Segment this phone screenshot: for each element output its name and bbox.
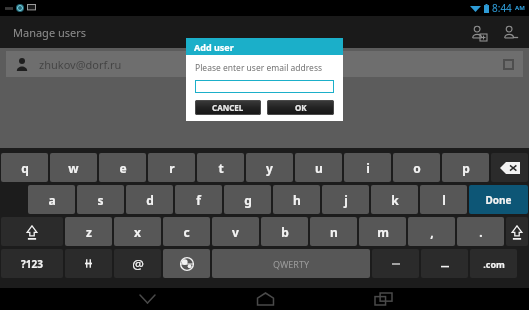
staticText: x (134, 224, 141, 240)
button[interactable]: z (65, 217, 112, 246)
button[interactable]: .com (470, 249, 517, 278)
button[interactable]: e (99, 153, 146, 182)
button[interactable]: ?123 (1, 249, 63, 278)
staticText: AM (515, 4, 525, 12)
staticText: n (330, 224, 338, 240)
staticText: c (183, 224, 190, 240)
staticText: m (377, 224, 389, 240)
button[interactable]: t (197, 153, 244, 182)
button[interactable]: q (1, 153, 48, 182)
staticText: y (266, 160, 273, 176)
button[interactable]: Home (236, 288, 294, 310)
staticText: t (218, 160, 224, 176)
button[interactable]: h (273, 185, 320, 214)
staticText: u (315, 160, 323, 176)
button[interactable]: s (77, 185, 124, 214)
staticText: .com (483, 258, 505, 270)
staticText: v (232, 224, 239, 240)
staticText: Manage users (13, 25, 87, 40)
button[interactable]: Input method (65, 249, 112, 278)
button[interactable]: f (175, 185, 222, 214)
staticText: w (68, 160, 79, 176)
button[interactable] (195, 80, 334, 93)
button[interactable]: c (163, 217, 210, 246)
staticText: . (479, 224, 483, 240)
staticText: i (366, 160, 370, 176)
staticText: p (462, 160, 470, 176)
staticText: e (119, 160, 127, 176)
button[interactable]: Space (212, 249, 370, 278)
button[interactable]: r (148, 153, 195, 182)
staticText: r (169, 160, 175, 176)
staticText: z (86, 224, 92, 240)
staticText: k (391, 192, 399, 208)
button[interactable]: Done (469, 185, 528, 214)
staticText: Add user (194, 41, 234, 53)
staticText: ?123 (21, 257, 43, 271)
staticText: b (281, 224, 289, 240)
staticText: Please enter user email address (195, 62, 323, 74)
button[interactable]: Add user (465, 19, 491, 45)
button[interactable]: v (212, 217, 259, 246)
staticText: q (21, 160, 29, 176)
staticText: 8:44 (492, 1, 512, 15)
button[interactable]: Back (118, 288, 176, 310)
staticText: h (293, 192, 301, 208)
button[interactable]: w (50, 153, 97, 182)
staticText: a (48, 192, 56, 208)
staticText: d (146, 192, 154, 208)
staticText: g (244, 192, 252, 208)
button[interactable]: CANCEL (195, 100, 261, 115)
button[interactable]: m (359, 217, 406, 246)
button[interactable]: u (295, 153, 342, 182)
staticText: f (196, 192, 201, 208)
button[interactable]: Select user (503, 59, 514, 70)
staticText: CANCEL (212, 102, 244, 113)
button[interactable]: Remove user (497, 19, 523, 45)
button[interactable]: o (393, 153, 440, 182)
staticText: Done (485, 193, 512, 207)
button[interactable]: a (28, 185, 75, 214)
button[interactable]: y (246, 153, 293, 182)
button[interactable]: k (371, 185, 418, 214)
staticText: l (442, 192, 446, 208)
button[interactable]: Shift (506, 217, 528, 246)
button[interactable]: d (126, 185, 173, 214)
button[interactable]: l (420, 185, 467, 214)
button[interactable]: Recent apps (354, 288, 412, 310)
button[interactable]: Hyphen (372, 249, 419, 278)
button[interactable]: @ (114, 249, 161, 278)
button[interactable]: , (408, 217, 455, 246)
button[interactable]: p (442, 153, 489, 182)
staticText: s (97, 192, 104, 208)
button[interactable]: j (322, 185, 369, 214)
button[interactable]: . (457, 217, 504, 246)
button[interactable]: Underscore (421, 249, 468, 278)
staticText: OK (295, 102, 307, 113)
button[interactable]: Change language (163, 249, 210, 278)
staticText: , (430, 224, 434, 240)
button[interactable]: i (344, 153, 391, 182)
staticText: o (413, 160, 421, 176)
button[interactable]: x (114, 217, 161, 246)
staticText: QWERTY (273, 258, 310, 270)
button[interactable]: zhukov@dorf.ru (6, 51, 523, 77)
button[interactable]: g (224, 185, 271, 214)
staticText: zhukov@dorf.ru (39, 57, 122, 72)
button[interactable]: Shift (1, 217, 63, 246)
button[interactable]: OK (267, 100, 334, 115)
button[interactable]: b (261, 217, 308, 246)
staticText: j (344, 192, 348, 208)
button[interactable]: n (310, 217, 357, 246)
button[interactable]: Backspace (491, 153, 528, 182)
staticText: @ (132, 255, 144, 273)
